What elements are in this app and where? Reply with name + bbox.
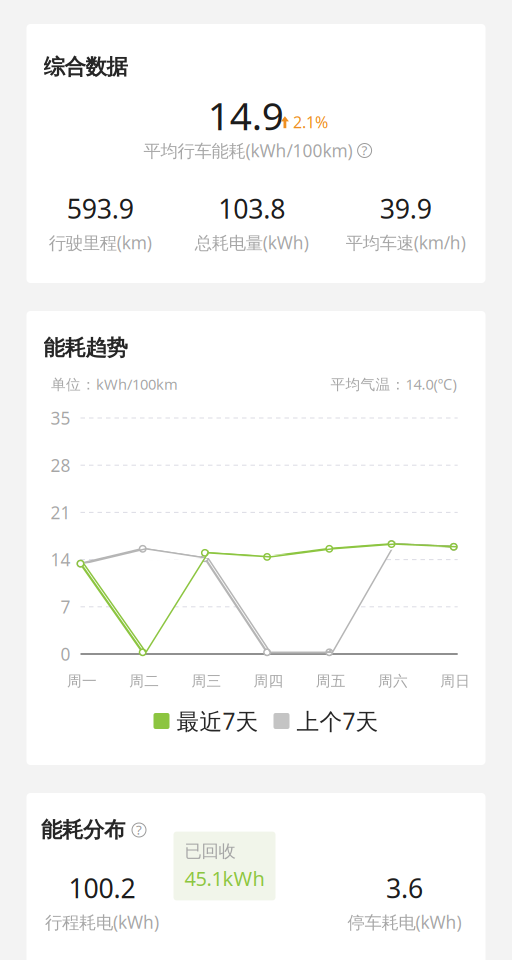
staticText: 45.1kWh bbox=[184, 865, 264, 891]
staticText: 103.8 bbox=[218, 191, 285, 226]
staticText: ? bbox=[136, 821, 142, 838]
staticText: 14 bbox=[50, 548, 70, 571]
staticText: 14.9 bbox=[208, 89, 284, 141]
staticText: 能耗分布 bbox=[41, 817, 125, 843]
staticText: 平均车速(km/h) bbox=[346, 231, 466, 254]
staticText: 周日 bbox=[440, 672, 470, 690]
staticText: 周六 bbox=[378, 672, 408, 690]
staticText: 行驶里程(km) bbox=[49, 231, 152, 254]
staticText: 100.2 bbox=[68, 870, 135, 906]
staticText: 3.6 bbox=[386, 870, 423, 906]
staticText: 35 bbox=[50, 406, 70, 429]
staticText: 周二 bbox=[129, 672, 159, 690]
staticText: 已回收 bbox=[184, 841, 235, 862]
staticText: 平均行车能耗(kWh/100km) bbox=[144, 139, 353, 162]
staticText: 28 bbox=[50, 454, 70, 477]
staticText: 停车耗电(kWh) bbox=[347, 910, 461, 933]
staticText: 行程耗电(kWh) bbox=[45, 910, 159, 933]
staticText: 周四 bbox=[254, 672, 284, 690]
staticText: 2.1% bbox=[293, 111, 328, 133]
staticText: 593.9 bbox=[67, 191, 134, 226]
staticText: 平均气温：14.0(℃) bbox=[330, 374, 456, 394]
staticText: 综合数据 bbox=[43, 54, 127, 80]
staticText: ? bbox=[362, 141, 368, 159]
staticText: 总耗电量(kWh) bbox=[195, 231, 309, 254]
staticText: 39.9 bbox=[380, 191, 432, 226]
staticText: 0 bbox=[60, 642, 70, 665]
staticText: 7 bbox=[60, 595, 70, 618]
staticText: 上个7天 bbox=[296, 706, 378, 736]
staticText: 21 bbox=[50, 501, 70, 524]
staticText: 周一 bbox=[67, 672, 97, 690]
staticText: 周三 bbox=[191, 672, 221, 690]
staticText: 最近7天 bbox=[176, 706, 258, 736]
staticText: 能耗趋势 bbox=[43, 335, 127, 361]
staticText: 周五 bbox=[316, 672, 346, 690]
staticText: 单位：kWh/100km bbox=[51, 374, 178, 394]
